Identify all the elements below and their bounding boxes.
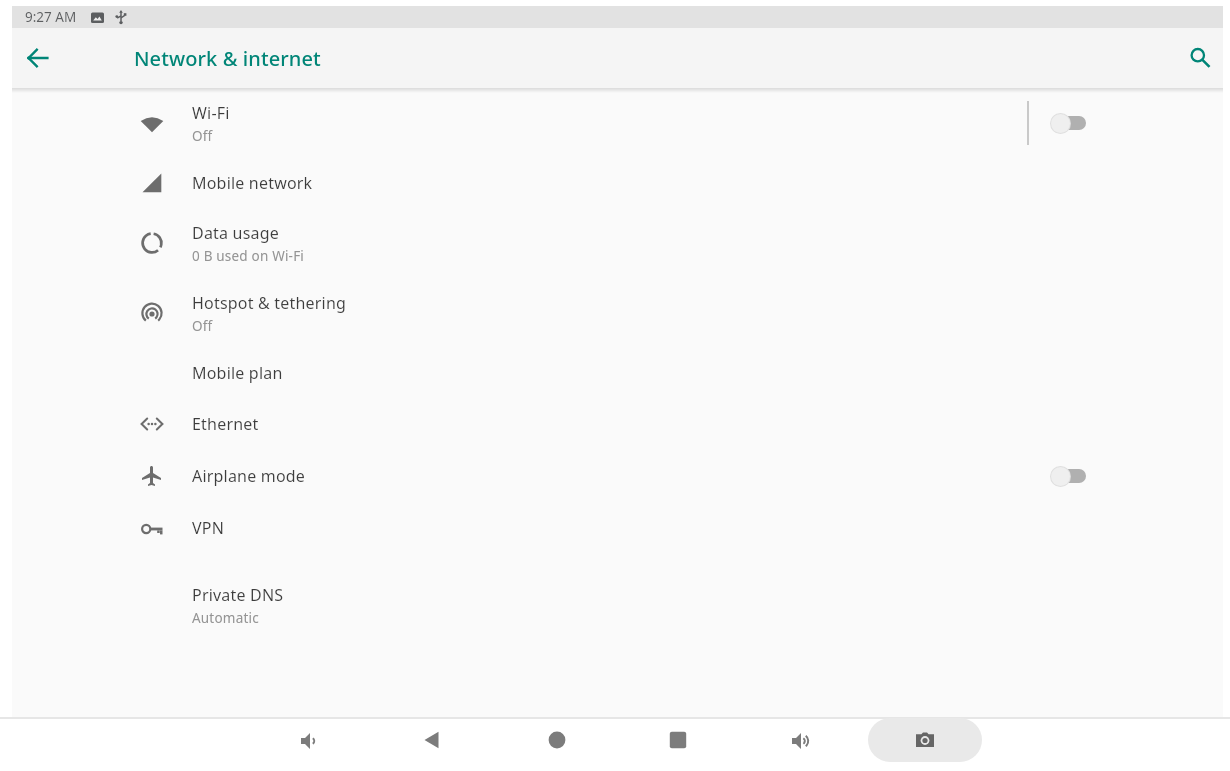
button[interactable]: Private DNS xyxy=(12,570,1223,640)
staticText: Data usage xyxy=(192,222,279,244)
button[interactable]: Airplane mode xyxy=(12,450,1223,502)
staticText: Automatic xyxy=(192,609,259,627)
staticText: VPN xyxy=(192,517,225,539)
button[interactable]: Ethernet xyxy=(12,398,1223,450)
staticText: Private DNS xyxy=(192,584,284,606)
button[interactable] xyxy=(1050,112,1086,134)
button[interactable]: Wi-Fi xyxy=(12,88,1223,158)
staticText: Off xyxy=(192,317,213,335)
button[interactable]: Hotspot & tethering xyxy=(12,278,1223,348)
staticText: Wi-Fi xyxy=(192,102,230,124)
button[interactable] xyxy=(657,719,699,761)
button[interactable] xyxy=(780,720,822,762)
staticText: 9:27 AM xyxy=(25,8,77,26)
staticText: Ethernet xyxy=(192,413,259,435)
staticText: Hotspot & tethering xyxy=(192,292,347,314)
button[interactable]: Mobile plan xyxy=(12,348,1223,398)
staticText: Airplane mode xyxy=(192,465,306,487)
button[interactable]: VPN xyxy=(12,502,1223,554)
button[interactable]: Mobile network xyxy=(12,158,1223,208)
button[interactable] xyxy=(289,720,331,762)
staticText: 0 B used on Wi-Fi xyxy=(192,247,305,265)
staticText: Mobile network xyxy=(192,172,313,194)
button[interactable] xyxy=(1178,36,1222,80)
staticText: Mobile plan xyxy=(192,362,283,384)
button[interactable] xyxy=(411,719,453,761)
button[interactable] xyxy=(536,719,578,761)
button[interactable] xyxy=(17,37,59,79)
staticText: Off xyxy=(192,127,213,145)
button[interactable]: Data usage xyxy=(12,208,1223,278)
staticText: Network & internet xyxy=(134,45,321,72)
button[interactable] xyxy=(868,718,982,762)
button[interactable] xyxy=(1050,465,1086,487)
